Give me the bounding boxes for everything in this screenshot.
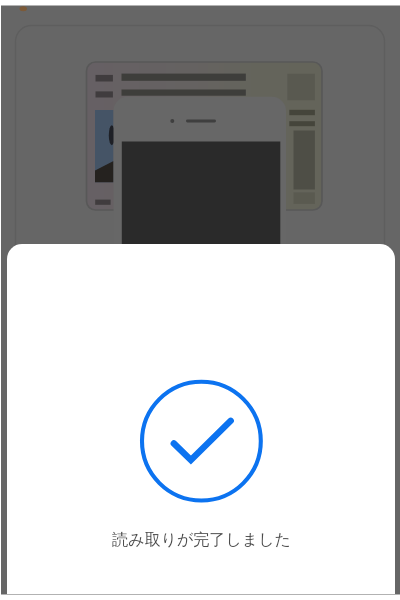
- staticText: 読み取りが完了しました: [112, 530, 291, 550]
- button[interactable]: 読み取り完了: [137, 377, 265, 505]
